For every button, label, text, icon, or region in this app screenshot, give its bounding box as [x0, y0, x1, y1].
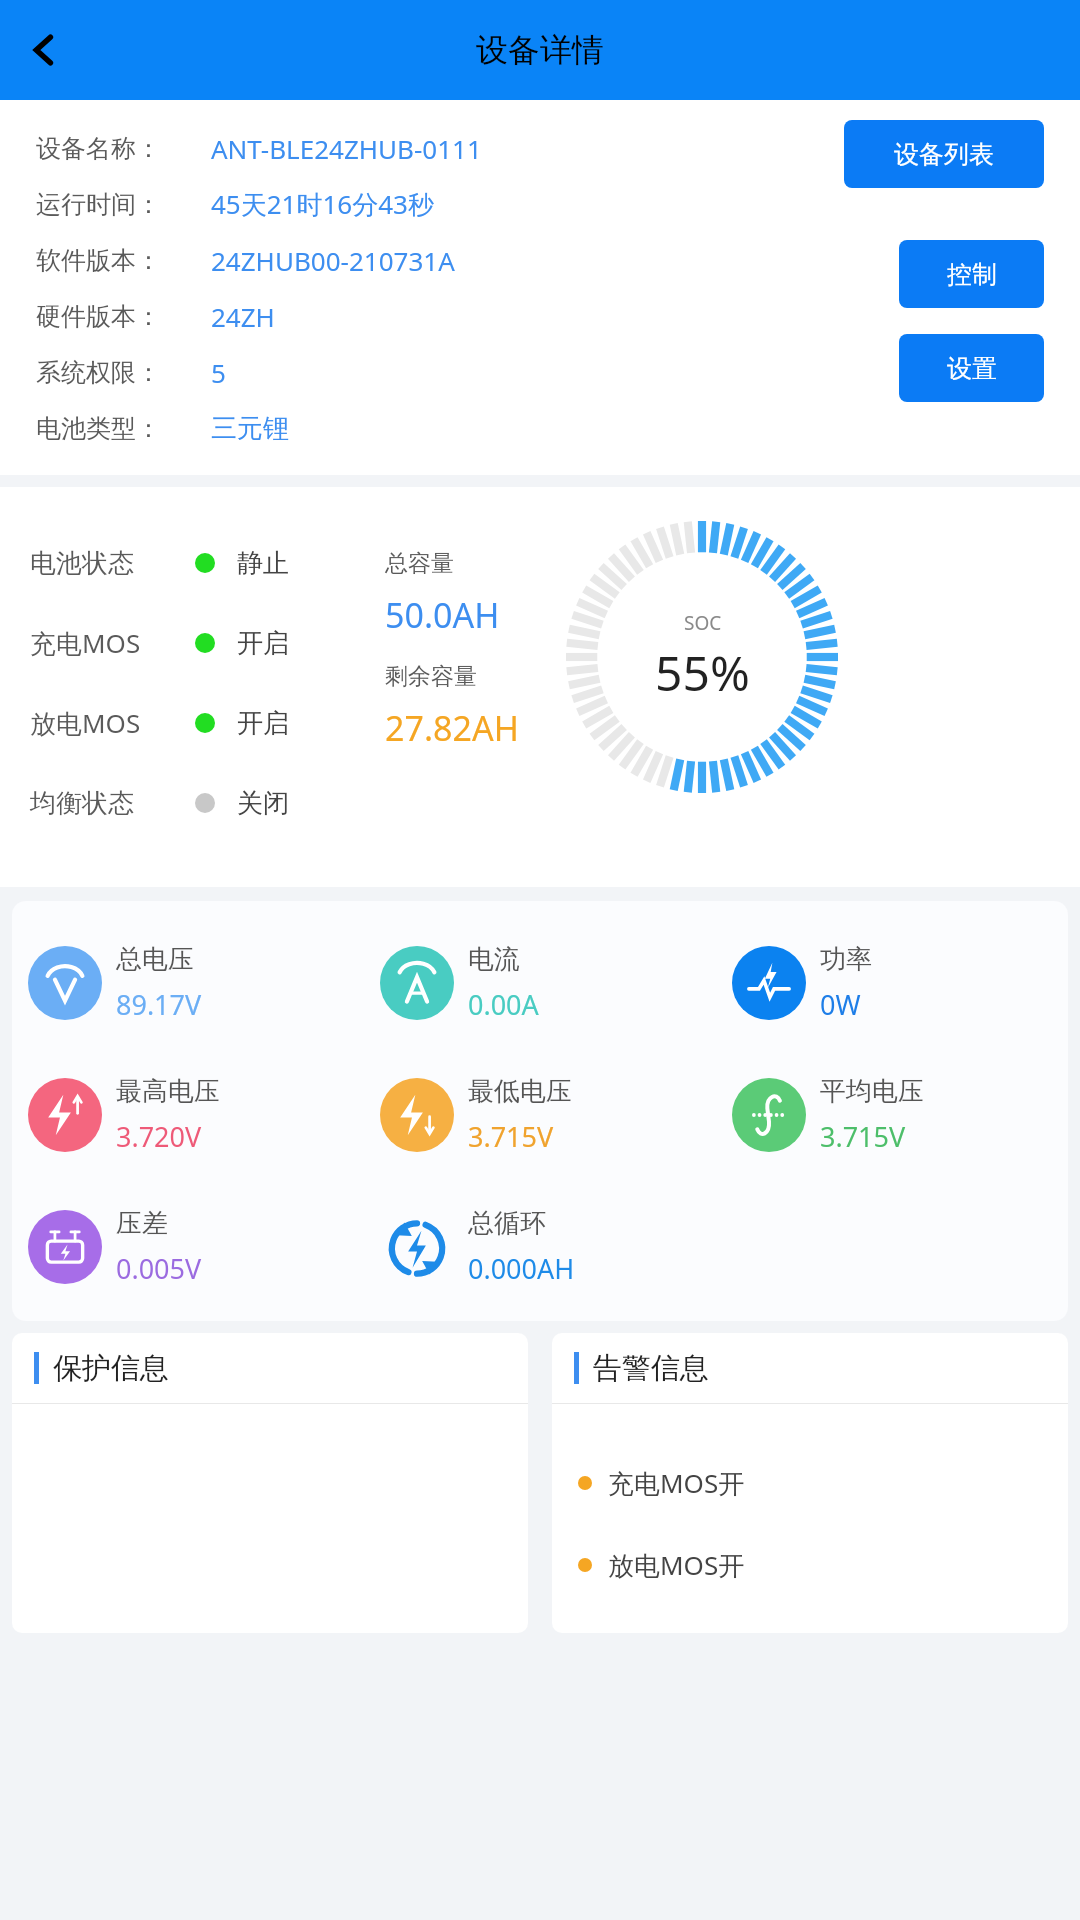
- staticText: 50.0AH: [385, 592, 500, 638]
- button[interactable]: 平均电压: [716, 1049, 1068, 1181]
- staticText: 总电压: [116, 943, 194, 976]
- staticText: 硬件版本：: [36, 301, 211, 332]
- staticText: 告警信息: [593, 1350, 709, 1387]
- staticText: 三元锂: [211, 412, 289, 445]
- staticText: 设置: [947, 353, 997, 384]
- staticText: 总循环: [468, 1207, 546, 1240]
- staticText: 24ZH: [211, 299, 275, 334]
- button[interactable]: 最低电压: [364, 1049, 716, 1181]
- staticText: 开启: [237, 707, 289, 740]
- button[interactable]: 总循环: [364, 1181, 716, 1313]
- staticText: 静止: [237, 547, 289, 580]
- staticText: 保护信息: [53, 1350, 169, 1387]
- staticText: 放电MOS: [30, 705, 195, 741]
- staticText: 平均电压: [820, 1075, 924, 1108]
- staticText: 最高电压: [116, 1075, 220, 1108]
- staticText: 3.720V: [116, 1118, 202, 1155]
- staticText: 5: [211, 355, 226, 390]
- button[interactable]: 最高电压: [12, 1049, 364, 1181]
- staticText: 0W: [820, 986, 861, 1023]
- staticText: 软件版本：: [36, 245, 211, 276]
- staticText: 0.000AH: [468, 1250, 575, 1287]
- button[interactable]: 控制: [899, 240, 1044, 308]
- button[interactable]: 总电压: [12, 917, 364, 1049]
- staticText: 最低电压: [468, 1075, 572, 1108]
- staticText: 放电MOS开: [608, 1547, 745, 1583]
- staticText: 总容量: [385, 549, 454, 578]
- staticText: 55%: [655, 640, 750, 705]
- staticText: 充电MOS: [30, 625, 195, 661]
- staticText: 设备列表: [894, 139, 994, 170]
- staticText: 系统权限：: [36, 357, 211, 388]
- staticText: 开启: [237, 627, 289, 660]
- button[interactable]: 功率: [716, 917, 1068, 1049]
- staticText: 控制: [947, 259, 997, 290]
- staticText: 电池类型：: [36, 413, 211, 444]
- staticText: 3.715V: [468, 1118, 554, 1155]
- staticText: 设备详情: [476, 30, 604, 70]
- staticText: 45天21时16分43秒: [211, 186, 434, 222]
- staticText: 3.715V: [820, 1118, 906, 1155]
- staticText: 89.17V: [116, 986, 202, 1023]
- button[interactable]: 设备列表: [844, 120, 1044, 188]
- staticText: 运行时间：: [36, 189, 211, 220]
- button[interactable]: 放电MOS开: [578, 1524, 1068, 1606]
- staticText: SOC: [684, 610, 722, 636]
- button[interactable]: 电流: [364, 917, 716, 1049]
- staticText: ANT-BLE24ZHUB-0111: [211, 131, 482, 166]
- staticText: 充电MOS开: [608, 1465, 745, 1501]
- staticText: 剩余容量: [385, 662, 477, 691]
- staticText: 均衡状态: [30, 787, 195, 820]
- staticText: 电流: [468, 943, 520, 976]
- staticText: 0.00A: [468, 986, 539, 1023]
- staticText: 0.005V: [116, 1250, 202, 1287]
- button[interactable]: 充电MOS开: [578, 1442, 1068, 1524]
- button[interactable]: 设置: [899, 334, 1044, 402]
- staticText: 压差: [116, 1207, 168, 1240]
- staticText: 电池状态: [30, 547, 195, 580]
- button[interactable]: 压差: [12, 1181, 364, 1313]
- staticText: 关闭: [237, 787, 289, 820]
- button[interactable]: Back: [12, 18, 76, 82]
- staticText: 设备名称：: [36, 133, 211, 164]
- staticText: 24ZHUB00-210731A: [211, 243, 455, 278]
- staticText: 27.82AH: [385, 705, 519, 751]
- staticText: 功率: [820, 943, 872, 976]
